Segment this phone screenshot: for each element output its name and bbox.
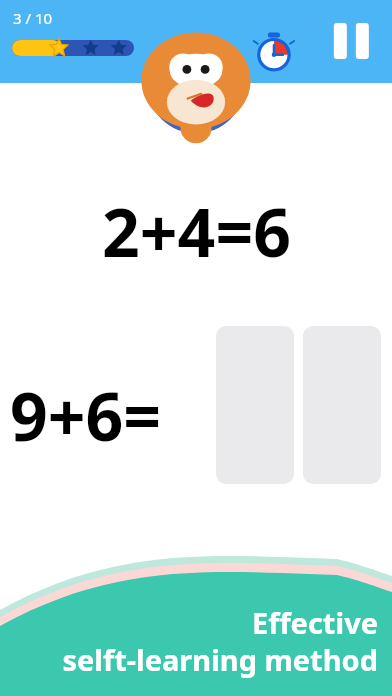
staticText: 9+6=: [10, 370, 162, 460]
button[interactable]: 3 / 10: [12, 8, 137, 64]
staticText: 2+4=6: [102, 186, 291, 276]
staticText: 3 / 10: [13, 8, 53, 28]
staticText: Effective selft-learning method: [62, 603, 378, 680]
button[interactable]: Timer: [250, 28, 296, 74]
button[interactable]: Pause: [325, 18, 377, 64]
button[interactable]: Avatar: [144, 33, 248, 137]
